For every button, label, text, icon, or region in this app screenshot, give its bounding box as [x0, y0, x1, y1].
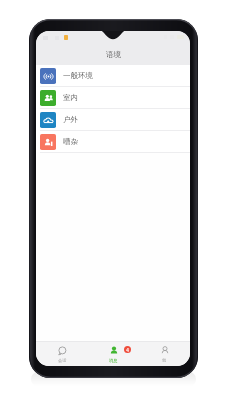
staticText: 户外	[63, 115, 78, 124]
staticText: 室内	[63, 93, 78, 102]
staticText: 消息	[109, 358, 118, 363]
staticText: 一般环境	[63, 71, 93, 80]
staticText: 嘈杂	[63, 137, 78, 146]
button[interactable]: 嘈杂	[36, 131, 190, 152]
staticText: 语境	[106, 50, 121, 59]
button[interactable]: 户外	[36, 109, 190, 130]
button[interactable]: 4	[88, 342, 139, 366]
staticText: 我	[162, 358, 167, 363]
button[interactable]: 我	[139, 342, 190, 366]
button[interactable]: 一般环境	[36, 65, 190, 86]
staticText: 会话	[58, 358, 67, 363]
button[interactable]: 室内	[36, 87, 190, 108]
button[interactable]: 会话	[36, 342, 88, 366]
staticText: 4	[126, 347, 129, 353]
